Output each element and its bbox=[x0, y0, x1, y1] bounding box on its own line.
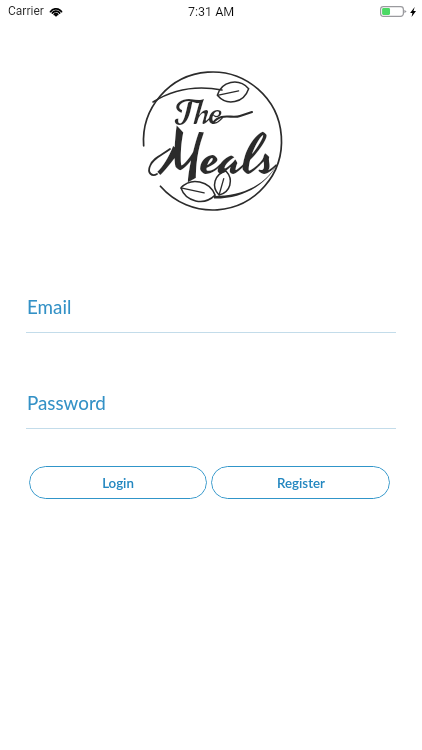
staticText: Meals bbox=[164, 117, 278, 199]
staticText: The bbox=[175, 88, 222, 137]
staticText: Carrier bbox=[8, 4, 44, 18]
button[interactable]: Register bbox=[211, 466, 390, 499]
staticText: Register bbox=[277, 475, 325, 491]
staticText: Password bbox=[27, 391, 106, 414]
button[interactable]: Login bbox=[29, 466, 207, 499]
staticText: Login bbox=[102, 475, 134, 491]
staticText: 7:31 AM bbox=[188, 4, 235, 19]
staticText: Email bbox=[27, 295, 72, 318]
